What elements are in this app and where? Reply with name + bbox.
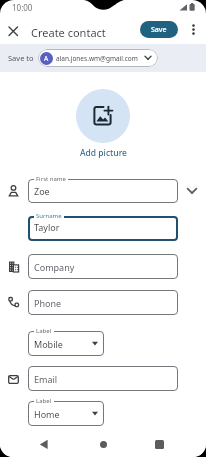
button[interactable] bbox=[5, 23, 22, 40]
button[interactable] bbox=[100, 441, 107, 448]
button[interactable] bbox=[28, 401, 104, 426]
staticText: Create contact bbox=[31, 25, 106, 40]
staticText: A bbox=[44, 54, 49, 63]
button[interactable] bbox=[76, 89, 130, 143]
staticText: Add picture bbox=[80, 147, 127, 159]
button[interactable] bbox=[186, 186, 198, 196]
button[interactable] bbox=[28, 290, 178, 315]
staticText: alan.jones.wm@gmail.com bbox=[56, 54, 138, 63]
staticText: Save to bbox=[8, 53, 34, 63]
staticText: Company bbox=[34, 261, 75, 273]
button[interactable] bbox=[38, 439, 50, 450]
staticText: Phone bbox=[34, 297, 62, 309]
staticText: 10:00 bbox=[12, 2, 33, 12]
button[interactable] bbox=[28, 216, 178, 241]
button[interactable] bbox=[190, 22, 197, 38]
staticText: First name bbox=[36, 175, 66, 183]
button[interactable] bbox=[28, 254, 178, 279]
button[interactable] bbox=[155, 440, 164, 449]
button[interactable] bbox=[38, 49, 158, 67]
staticText: Email bbox=[34, 373, 58, 385]
staticText: Surname bbox=[36, 212, 62, 220]
button[interactable] bbox=[28, 179, 178, 203]
staticText: Taylor bbox=[34, 221, 60, 233]
button[interactable] bbox=[28, 366, 178, 391]
staticText: Home bbox=[34, 408, 60, 420]
button[interactable] bbox=[28, 331, 104, 356]
staticText: Save bbox=[151, 25, 167, 35]
staticText: Mobile bbox=[34, 338, 63, 350]
staticText: Label bbox=[36, 397, 52, 405]
staticText: Zoe bbox=[34, 185, 50, 197]
button[interactable]: Save bbox=[140, 21, 178, 38]
staticText: Label bbox=[36, 327, 52, 335]
